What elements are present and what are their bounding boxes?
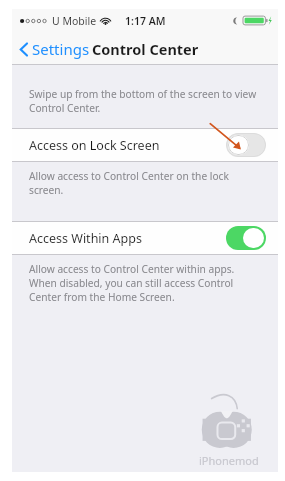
staticText: Access on Lock Screen (29, 137, 160, 154)
button[interactable]: Off (226, 133, 266, 157)
staticText: Control Center (92, 39, 199, 59)
button[interactable]: Access on Lock Screen (12, 128, 278, 162)
staticText: Allow access to Control Center on the lo… (29, 169, 264, 197)
staticText: Settings (32, 39, 90, 59)
button[interactable]: Settings (12, 35, 96, 63)
staticText: 1:17 AM (125, 14, 166, 28)
staticText: iPhonemod (199, 453, 259, 468)
staticText: Access Within Apps (29, 230, 142, 247)
button[interactable]: On (226, 226, 266, 250)
staticText: Swipe up from the bottom of the screen t… (29, 87, 264, 115)
button[interactable]: Access Within Apps (12, 221, 278, 255)
staticText: U Mobile (52, 14, 97, 28)
staticText: Allow access to Control Center within ap… (29, 262, 264, 304)
